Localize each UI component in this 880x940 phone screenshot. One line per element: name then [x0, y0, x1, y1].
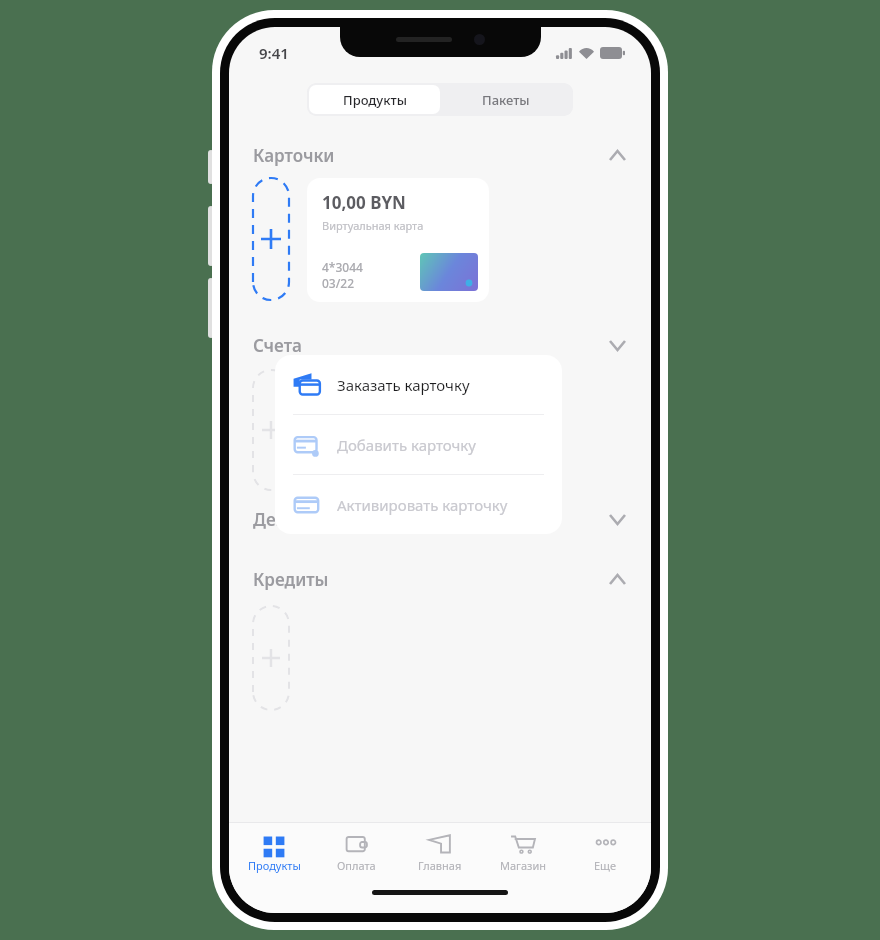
staticText: Главная: [418, 858, 462, 873]
button[interactable]: Пакеты: [440, 85, 571, 114]
staticText: Добавить карточку: [337, 435, 476, 455]
staticText: Депозиты: [253, 508, 339, 531]
staticText: Карточки: [253, 144, 335, 167]
staticText: 10,00 BYN: [322, 191, 406, 214]
staticText: 9:41: [259, 43, 289, 63]
button[interactable]: Добавить карточку: [275, 415, 562, 474]
staticText: Кредиты: [253, 568, 329, 591]
button[interactable]: Активировать карточку: [275, 475, 562, 534]
staticText: 4*3044: [322, 259, 363, 275]
staticText: Продукты: [248, 858, 301, 873]
button[interactable]: Еще: [564, 823, 647, 883]
staticText: Активировать карточку: [337, 495, 508, 515]
button[interactable]: Магазин: [481, 823, 564, 883]
button[interactable]: Кредиты: [229, 564, 651, 594]
button[interactable]: Оплата: [315, 823, 398, 883]
staticText: Еще: [594, 858, 617, 873]
button[interactable]: Продукты: [233, 823, 315, 883]
staticText: Магазин: [500, 858, 546, 873]
button[interactable]: Продукты: [309, 85, 440, 114]
staticText: Заказать карточку: [337, 375, 470, 395]
staticText: Виртуальная карта: [322, 218, 424, 233]
staticText: Пакеты: [482, 91, 530, 109]
staticText: 03/22: [322, 275, 355, 291]
button[interactable]: Карточки: [229, 140, 651, 170]
button[interactable]: Главная: [398, 823, 481, 883]
button[interactable]: 10,00 BYN: [307, 178, 489, 302]
button[interactable]: Add card: [253, 178, 289, 300]
staticText: Счета: [253, 334, 302, 357]
button[interactable]: Заказать карточку: [275, 355, 562, 414]
staticText: Продукты: [343, 91, 407, 109]
staticText: Оплата: [337, 858, 376, 873]
button[interactable]: Add: [253, 606, 289, 710]
button[interactable]: Счета: [229, 330, 651, 360]
button[interactable]: Депозиты: [229, 504, 651, 534]
button[interactable]: Add: [253, 370, 289, 490]
